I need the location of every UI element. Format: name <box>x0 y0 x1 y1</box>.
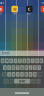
staticText: a <box>4 66 5 69</box>
staticText: m <box>34 73 36 76</box>
staticText: M <box>0 6 2 12</box>
button[interactable]: v <box>20 72 24 77</box>
staticText: k <box>34 66 35 69</box>
staticText: ☺ <box>10 80 13 83</box>
staticText: n <box>30 73 32 76</box>
staticText: Search <box>2 51 10 55</box>
button[interactable]: r <box>14 58 17 63</box>
staticText: w <box>6 59 8 62</box>
staticText: q <box>2 59 4 62</box>
button[interactable]: ⌫ <box>37 72 42 77</box>
staticText: d <box>12 66 14 69</box>
button[interactable]: e <box>9 58 13 63</box>
button[interactable]: S <box>41 6 44 15</box>
button[interactable]: q <box>1 58 5 63</box>
staticText: ▮▮▮ ⌁▭ <box>41 2 44 4</box>
staticText: p <box>40 59 42 62</box>
button[interactable]: b <box>24 72 28 77</box>
button[interactable]: C <box>26 6 33 15</box>
button[interactable]: g <box>20 65 24 70</box>
staticText: g <box>21 66 23 69</box>
button[interactable]: t <box>18 58 22 63</box>
staticText: y <box>24 59 25 62</box>
staticText: ⌫ <box>38 73 42 76</box>
staticText: h <box>25 66 27 69</box>
staticText: u <box>27 59 29 62</box>
button[interactable]: return <box>31 79 41 84</box>
button[interactable]: u <box>27 58 30 63</box>
staticText: 9:41 <box>0 1 5 5</box>
staticText: return <box>33 80 38 82</box>
staticText: l <box>39 66 40 69</box>
button[interactable]: i <box>31 58 35 63</box>
button[interactable]: space <box>14 79 30 84</box>
staticText: 123 <box>5 80 8 82</box>
staticText: Set <box>43 13 44 15</box>
button[interactable]: ○ <box>0 51 44 56</box>
button[interactable]: y <box>22 58 26 63</box>
button[interactable]: f <box>16 65 20 70</box>
button[interactable]: M <box>0 6 3 15</box>
staticText: j <box>30 66 31 69</box>
button[interactable]: z <box>7 72 11 77</box>
button[interactable]: s <box>7 65 11 70</box>
button[interactable]: n <box>29 72 32 77</box>
staticText: C <box>28 6 31 12</box>
staticText: r <box>15 59 16 62</box>
staticText: t <box>19 59 20 62</box>
button[interactable]: h <box>24 65 28 70</box>
staticText: ⇧ <box>3 73 5 76</box>
staticText: b <box>25 73 27 76</box>
staticText: c <box>17 73 18 76</box>
button[interactable]: m <box>33 72 37 77</box>
button[interactable]: x <box>11 72 15 77</box>
button[interactable]: a <box>3 65 7 70</box>
staticText: Clock <box>27 13 31 15</box>
button[interactable]: j <box>29 65 32 70</box>
staticText: o <box>36 59 38 62</box>
staticText: Mail <box>0 13 1 15</box>
staticText: z <box>9 73 10 76</box>
button[interactable]: o <box>35 58 39 63</box>
button[interactable]: l <box>37 65 41 70</box>
staticText: x <box>13 73 14 76</box>
staticText: S <box>43 6 44 12</box>
staticText: f <box>17 66 18 69</box>
button[interactable]: ☺ <box>9 79 13 84</box>
staticText: space <box>19 79 26 83</box>
staticText: e <box>10 59 12 62</box>
button[interactable]: d <box>11 65 15 70</box>
button[interactable]: 123 <box>3 79 9 84</box>
staticText: N <box>13 6 16 12</box>
button[interactable]: N <box>11 6 18 15</box>
staticText: i <box>32 59 33 62</box>
button[interactable]: c <box>16 72 20 77</box>
button[interactable]: ⇧ <box>2 72 7 77</box>
button[interactable]: p <box>39 58 43 63</box>
button[interactable]: w <box>5 58 9 63</box>
staticText: s <box>9 66 10 69</box>
staticText: Notes <box>13 13 17 15</box>
staticText: ○ <box>0 52 1 55</box>
button[interactable]: k <box>33 65 37 70</box>
